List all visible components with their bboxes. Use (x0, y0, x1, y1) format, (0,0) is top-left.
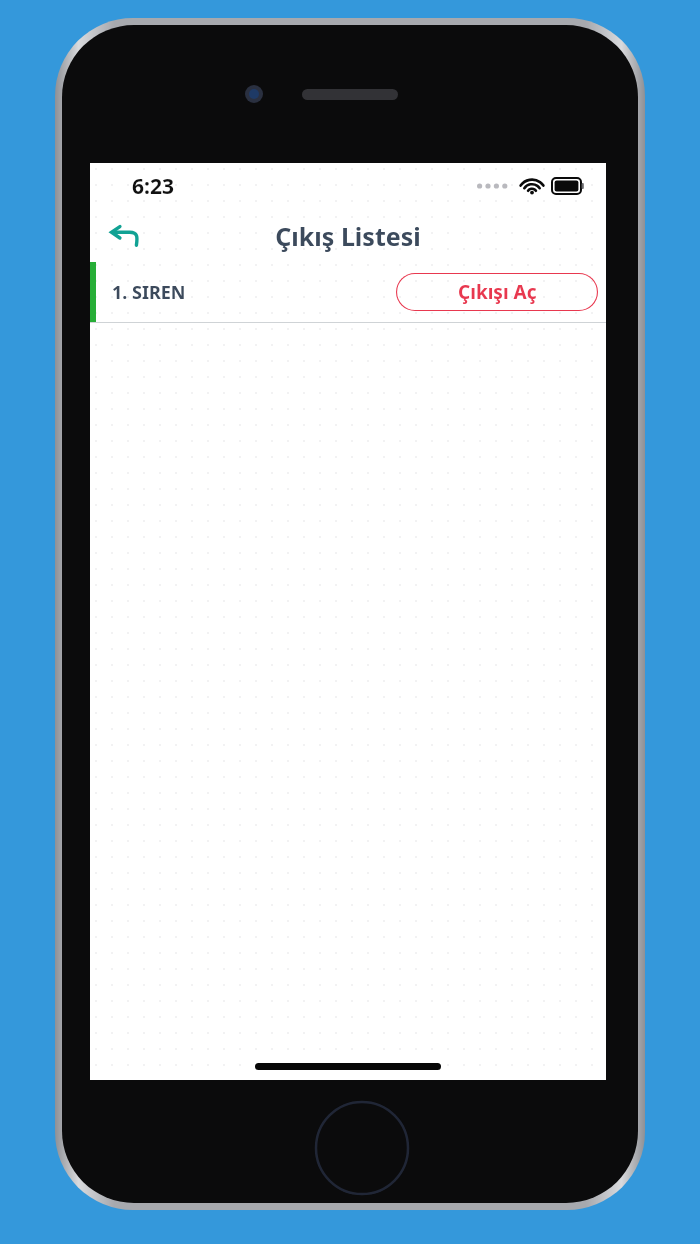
button[interactable]: Çıkışı Aç (396, 273, 598, 311)
staticText: 6:23 (132, 172, 174, 201)
staticText: 1. SIREN (112, 280, 186, 305)
staticText: Çıkış Listesi (275, 219, 421, 253)
staticText: Çıkışı Aç (458, 279, 537, 305)
button[interactable]: 1. SIREN (90, 262, 606, 322)
button[interactable]: Geri (96, 209, 154, 262)
